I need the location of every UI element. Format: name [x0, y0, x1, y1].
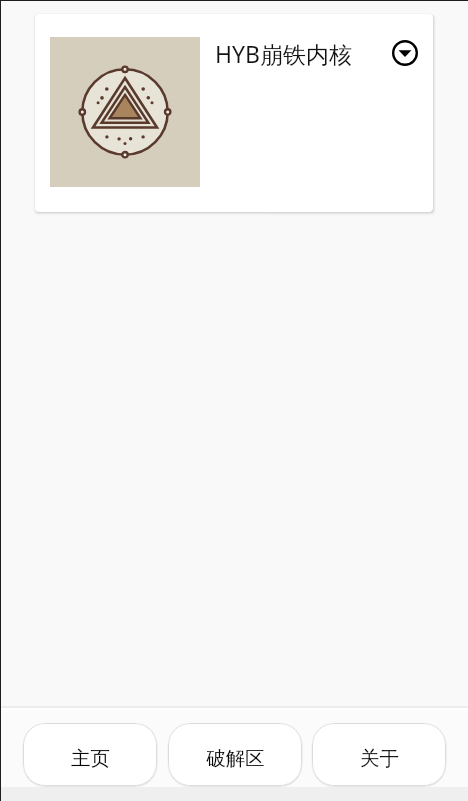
- button[interactable]: 关于: [312, 723, 446, 786]
- staticText: 破解区: [206, 746, 265, 771]
- staticText: 主页: [71, 746, 110, 771]
- staticText: 关于: [360, 746, 399, 771]
- button[interactable]: HYB崩铁内核: [35, 14, 433, 212]
- button[interactable]: 破解区: [168, 723, 302, 786]
- button[interactable]: 主页: [23, 723, 157, 786]
- staticText: HYB崩铁内核: [215, 38, 353, 69]
- button[interactable]: Expand: [391, 39, 419, 67]
